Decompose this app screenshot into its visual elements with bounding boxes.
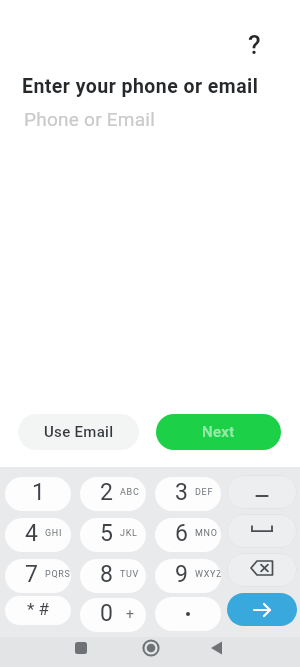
staticText: Enter your phone or email [22, 75, 259, 98]
button[interactable]: 3 [155, 477, 221, 511]
staticText: 1 [32, 479, 45, 506]
button[interactable]: * # [5, 596, 71, 625]
staticText: JKL [120, 528, 138, 539]
staticText: 8 [100, 561, 113, 588]
staticText: TUV [120, 569, 140, 580]
button[interactable] [205, 636, 228, 659]
staticText: 3 [175, 479, 188, 506]
staticText: + [126, 606, 135, 622]
staticText: 9 [175, 561, 188, 588]
button[interactable]: 6 [155, 518, 221, 552]
staticText: 2 [100, 479, 113, 506]
button[interactable] [227, 475, 297, 509]
staticText: DEF [195, 487, 214, 498]
staticText: * # [27, 599, 50, 619]
staticText: GHI [45, 528, 63, 539]
staticText: 5 [100, 520, 113, 547]
staticText: MNO [195, 528, 218, 539]
button[interactable]: 1 [5, 477, 71, 511]
button[interactable]: 2 [80, 477, 146, 511]
staticText: ABC [120, 487, 140, 498]
staticText: PQRS [45, 569, 71, 580]
button[interactable]: 9 [155, 559, 221, 593]
button[interactable] [227, 593, 297, 626]
button[interactable]: 5 [80, 518, 146, 552]
button[interactable] [69, 636, 92, 659]
staticText: WXYZ [195, 569, 221, 580]
staticText: 7 [25, 561, 38, 588]
button[interactable]: Use Email [18, 414, 139, 450]
button[interactable] [227, 553, 297, 587]
button[interactable]: 7 [5, 559, 71, 593]
button[interactable]: Next [156, 414, 281, 450]
staticText: 4 [25, 520, 38, 547]
button[interactable]: 0 [80, 598, 146, 632]
staticText: ? [248, 30, 261, 54]
staticText: 0 [100, 600, 113, 627]
button[interactable]: 8 [80, 559, 146, 593]
button[interactable]: 4 [5, 518, 71, 552]
button[interactable] [139, 636, 162, 659]
button[interactable] [227, 514, 297, 548]
staticText: Next [202, 423, 235, 441]
button[interactable]: ? [239, 30, 269, 54]
staticText: Use Email [44, 423, 114, 441]
button[interactable]: Phone or Email [24, 108, 300, 130]
staticText: 6 [175, 520, 188, 547]
button[interactable] [155, 597, 221, 631]
